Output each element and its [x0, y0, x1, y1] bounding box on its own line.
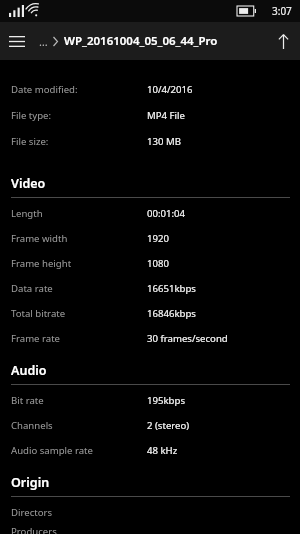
staticText: Audio sample rate	[11, 444, 93, 457]
button[interactable]: Data rate	[0, 276, 300, 301]
staticText: Producers	[11, 525, 57, 534]
staticText: File size:	[11, 135, 49, 148]
button[interactable]: Bit rate	[0, 388, 300, 413]
button[interactable]: Date modified:	[0, 76, 300, 102]
staticText: Frame width	[11, 232, 68, 245]
staticText: Date modified:	[11, 83, 78, 96]
staticText: 48 kHz	[147, 444, 178, 457]
button[interactable]: Menu	[0, 22, 34, 60]
staticText: Directors	[11, 506, 53, 519]
button[interactable]: Audio sample rate	[0, 438, 300, 463]
staticText: 1920	[147, 232, 169, 245]
staticText: 16651kbps	[147, 282, 196, 295]
button[interactable]: File type:	[0, 102, 300, 128]
button[interactable]: Length	[0, 201, 300, 226]
staticText: MP4 File	[147, 109, 185, 122]
button[interactable]: Frame rate	[0, 326, 300, 351]
staticText: Video	[11, 175, 46, 192]
staticText: Channels	[11, 419, 53, 432]
button[interactable]: Producers	[0, 525, 300, 534]
staticText: 3:07	[272, 4, 292, 18]
staticText: 195kbps	[147, 394, 185, 407]
staticText: 10/4/2016	[147, 83, 193, 96]
staticText: 30 frames/second	[147, 332, 228, 345]
staticText: Total bitrate	[11, 307, 66, 320]
staticText: 130 MB	[147, 135, 181, 148]
button[interactable]: File size:	[0, 128, 300, 154]
button[interactable]: Directors	[0, 500, 300, 525]
button[interactable]: …	[39, 33, 218, 49]
staticText: 1080	[147, 257, 169, 270]
staticText: Data rate	[11, 282, 53, 295]
staticText: 16846kbps	[147, 307, 196, 320]
staticText: Frame height	[11, 257, 72, 270]
button[interactable]: Scroll to top	[266, 22, 300, 60]
staticText: WP_20161004_05_06_44_Pro	[64, 33, 218, 49]
staticText: 2 (stereo)	[147, 419, 190, 432]
staticText: 00:01:04	[147, 207, 186, 220]
staticText: File type:	[11, 109, 52, 122]
button[interactable]: Total bitrate	[0, 301, 300, 326]
staticText: Audio	[11, 362, 47, 379]
staticText: Frame rate	[11, 332, 61, 345]
staticText: Bit rate	[11, 394, 44, 407]
staticText: …	[39, 34, 48, 49]
button[interactable]: Channels	[0, 413, 300, 438]
button[interactable]: Frame height	[0, 251, 300, 276]
staticText: Length	[11, 207, 43, 220]
button[interactable]: Frame width	[0, 226, 300, 251]
staticText: Origin	[11, 474, 50, 491]
